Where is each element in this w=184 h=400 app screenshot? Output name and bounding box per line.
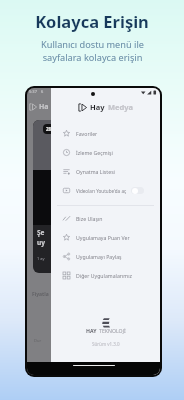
staticText: Şe: [37, 228, 45, 237]
staticText: HAY: [86, 327, 97, 334]
staticText: Videoları Youtube'da aç: [76, 188, 127, 194]
staticText: İzleme Geçmişi: [76, 149, 113, 156]
staticText: Kullanıcı dostu menü ile sayfalara kolay…: [41, 38, 144, 64]
staticText: 5:37: [29, 89, 37, 94]
staticText: Bize Ulaşın: [76, 215, 103, 222]
button[interactable]: Oynatma Listesi: [51, 162, 160, 181]
staticText: Diğer Uygulamalarımız: [76, 272, 132, 279]
staticText: Oynatma Listesi: [76, 168, 115, 175]
button[interactable]: Uygulamaya Puan Ver: [51, 228, 160, 247]
button[interactable]: İzleme Geçmişi: [51, 143, 160, 162]
staticText: Kolayca Erişin: [35, 10, 149, 32]
staticText: Ha: [39, 102, 49, 112]
staticText: Sürüm v1.3.0: [92, 341, 120, 347]
button[interactable]: Bize Ulaşın: [51, 209, 160, 228]
staticText: Dur: [34, 338, 42, 343]
button[interactable]: Diğer Uygulamalarımız: [51, 266, 160, 285]
staticText: 6: [41, 89, 44, 94]
staticText: 1 ay: [37, 256, 45, 261]
staticText: 28 S: [46, 126, 55, 132]
button[interactable]: Favoriler: [51, 124, 160, 143]
button[interactable]: Videoları Youtube'da aç: [51, 181, 160, 200]
staticText: Hay: [90, 102, 105, 112]
staticText: Medya: [108, 102, 134, 112]
button[interactable]: Uygulamayı Paylaş: [51, 247, 160, 266]
staticText: TEKNOLOJİ: [99, 327, 126, 334]
staticText: Fiyatla: [32, 291, 49, 298]
staticText: Uygulamayı Paylaş: [76, 253, 122, 260]
staticText: Uygulamaya Puan Ver: [76, 234, 130, 241]
staticText: Favoriler: [76, 130, 98, 137]
staticText: uy: [37, 238, 45, 247]
